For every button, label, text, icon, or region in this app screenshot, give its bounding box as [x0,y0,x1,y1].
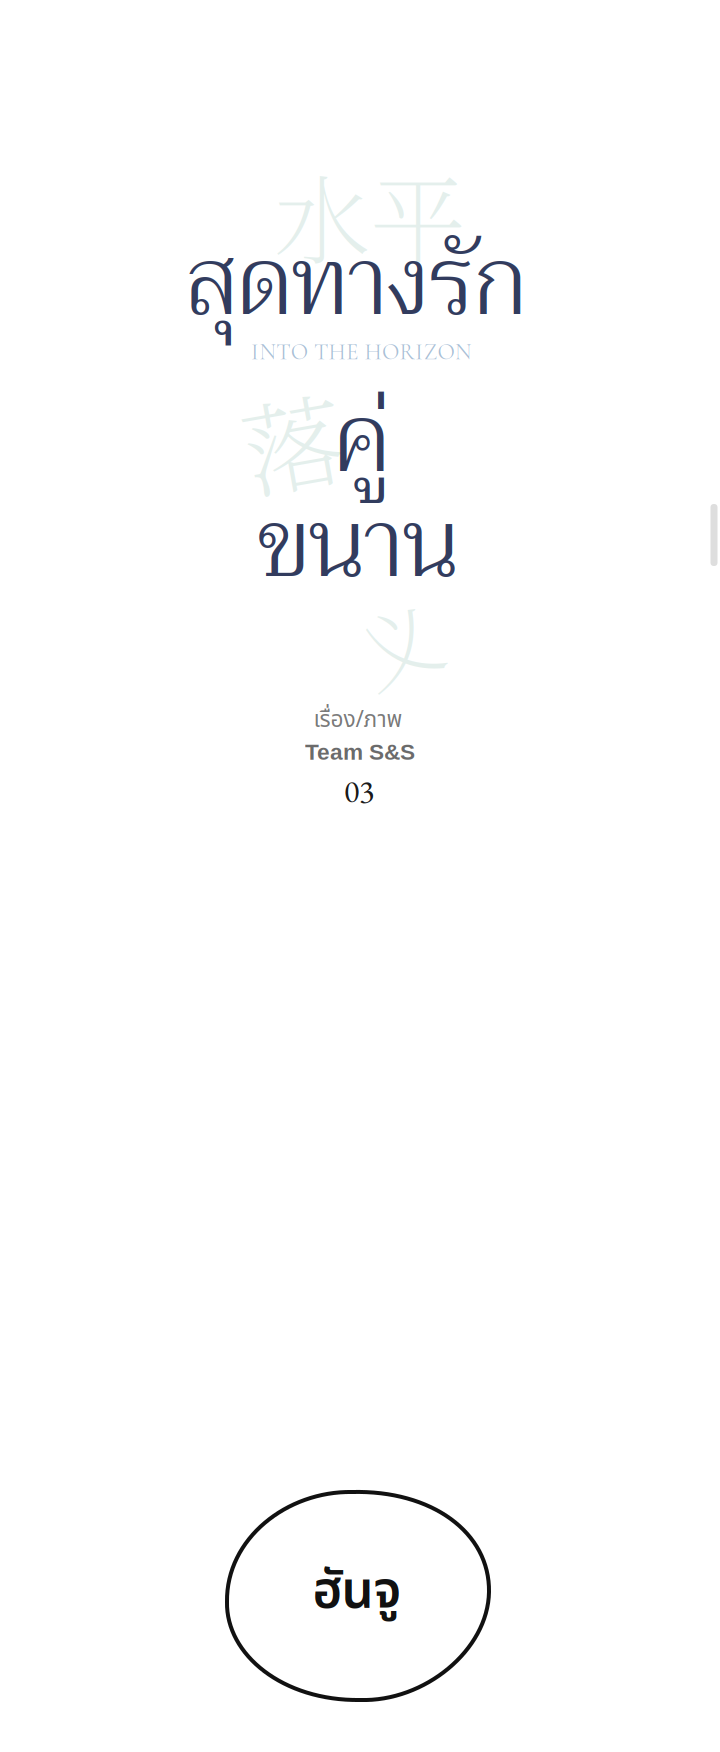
staticText: 水平 [274,145,466,283]
staticText: คู่ [334,359,390,521]
staticText: 03 [344,770,374,812]
staticText: ขนาน [258,464,458,626]
staticText: ฮันจู [312,1554,401,1630]
staticText: เรื่อง/ภาพ [313,703,402,737]
staticText: สุดทางรัก [186,202,526,364]
button[interactable]: Toggle reader controls [0,0,720,1752]
staticText: Team S&S [305,739,415,765]
staticText: INTO THE HORIZON [251,338,471,366]
staticText: 落 [241,367,342,513]
staticText: 义 [356,583,439,701]
